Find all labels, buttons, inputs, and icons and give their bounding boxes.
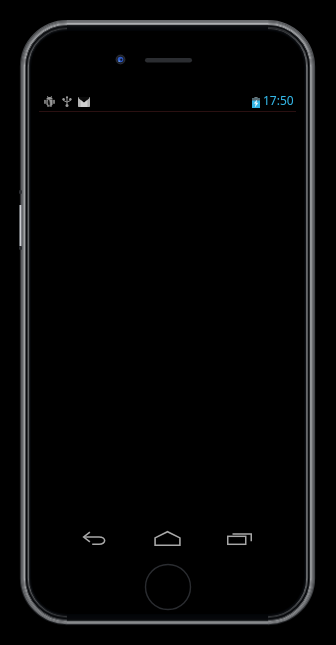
staticText: 17:50 xyxy=(263,92,294,108)
button[interactable]: Home xyxy=(146,517,188,559)
button[interactable]: Home button xyxy=(145,562,191,608)
button[interactable]: Recents xyxy=(218,517,260,559)
button[interactable]: Back xyxy=(73,517,115,559)
